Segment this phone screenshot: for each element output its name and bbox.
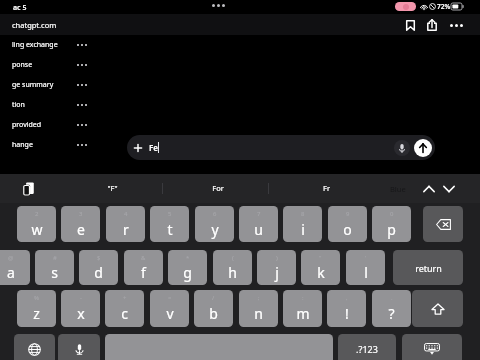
- staticText: l: [364, 263, 368, 282]
- button[interactable]: .: [372, 290, 411, 327]
- staticText: Fe: [149, 142, 158, 153]
- button[interactable]: [105, 334, 333, 360]
- staticText: y: [211, 220, 219, 239]
- button[interactable]: *: [168, 250, 207, 285]
- button[interactable]: ": [301, 250, 340, 285]
- button[interactable]: Add attachment: [129, 139, 147, 157]
- staticText: ': [365, 254, 367, 262]
- button[interactable]: hange: [0, 135, 100, 155]
- button[interactable]: Backspace: [423, 206, 463, 242]
- staticText: .?123: [356, 343, 378, 355]
- button[interactable]: Share: [423, 16, 441, 34]
- button[interactable]: Dictate: [394, 140, 410, 156]
- button[interactable]: (: [213, 250, 252, 285]
- button[interactable]: $: [79, 250, 118, 285]
- button[interactable]: 3: [61, 206, 100, 242]
- button[interactable]: ': [346, 250, 385, 285]
- staticText: chatgpt.com: [12, 20, 57, 30]
- staticText: provided: [12, 120, 42, 130]
- button[interactable]: ponse: [0, 55, 100, 75]
- staticText: s: [51, 263, 58, 282]
- button[interactable]: "F": [86, 178, 138, 198]
- button[interactable]: .?123: [338, 334, 396, 360]
- staticText: Fr: [323, 183, 330, 193]
- staticText: v: [166, 304, 174, 323]
- staticText: ?: [388, 304, 395, 323]
- staticText: ): [276, 254, 278, 262]
- button[interactable]: Shift: [412, 290, 463, 327]
- button[interactable]: Previous suggestion: [421, 181, 436, 196]
- button[interactable]: -: [61, 290, 100, 327]
- staticText: a: [7, 263, 15, 282]
- button[interactable]: Next suggestion: [441, 181, 456, 196]
- staticText: ling exchange: [12, 40, 58, 50]
- staticText: ge summary: [12, 80, 54, 90]
- button[interactable]: For: [192, 178, 244, 198]
- staticText: (: [232, 254, 234, 262]
- button[interactable]: 2: [17, 206, 56, 242]
- button[interactable]: @: [0, 250, 30, 285]
- button[interactable]: Bookmarks: [401, 16, 419, 34]
- staticText: t: [167, 220, 173, 239]
- button[interactable]: 0: [372, 206, 411, 242]
- button[interactable]: Fr: [300, 178, 352, 198]
- staticText: n: [254, 304, 263, 323]
- button[interactable]: Switch keyboard language: [14, 334, 55, 360]
- staticText: &: [141, 254, 146, 262]
- staticText: p: [387, 220, 396, 239]
- button[interactable]: 6: [195, 206, 234, 242]
- button[interactable]: +: [105, 290, 144, 327]
- button[interactable]: provided: [0, 115, 100, 135]
- button[interactable]: Send: [414, 139, 432, 157]
- staticText: 9: [346, 210, 350, 218]
- button[interactable]: ): [257, 250, 296, 285]
- staticText: k: [317, 263, 325, 282]
- staticText: m: [296, 304, 310, 323]
- button[interactable]: /: [194, 290, 233, 327]
- staticText: 5: [168, 210, 172, 218]
- button[interactable]: Voice input: [58, 334, 100, 360]
- staticText: w: [31, 220, 43, 239]
- staticText: ;: [258, 294, 260, 302]
- staticText: 72%: [437, 2, 451, 11]
- button[interactable]: tion: [0, 95, 100, 115]
- button[interactable]: Hide keyboard: [402, 334, 462, 360]
- staticText: %: [34, 294, 39, 302]
- staticText: =: [168, 294, 172, 302]
- button[interactable]: %: [17, 290, 56, 327]
- staticText: "F": [107, 183, 118, 193]
- staticText: 0: [390, 210, 394, 218]
- button[interactable]: ;: [239, 290, 278, 327]
- staticText: j: [275, 263, 279, 282]
- staticText: 4: [124, 210, 128, 218]
- staticText: e: [77, 220, 85, 239]
- staticText: x: [77, 304, 85, 323]
- button[interactable]: ling exchange: [0, 35, 100, 55]
- button[interactable]: return: [393, 250, 463, 285]
- button[interactable]: Paste: [21, 181, 36, 196]
- staticText: z: [33, 304, 40, 323]
- staticText: 3: [79, 210, 83, 218]
- button[interactable]: 8: [283, 206, 322, 242]
- button[interactable]: 4: [106, 206, 145, 242]
- button[interactable]: ,: [327, 290, 366, 327]
- button[interactable]: :: [283, 290, 322, 327]
- staticText: #: [53, 254, 57, 262]
- staticText: /: [212, 294, 215, 302]
- button[interactable]: #: [35, 250, 74, 285]
- button[interactable]: 7: [239, 206, 278, 242]
- button[interactable]: More options: [447, 16, 465, 34]
- staticText: ": [319, 254, 322, 262]
- button[interactable]: 5: [150, 206, 189, 242]
- button[interactable]: &: [124, 250, 163, 285]
- button[interactable]: ge summary: [0, 75, 100, 95]
- staticText: *: [186, 254, 190, 262]
- staticText: f: [141, 263, 146, 282]
- button[interactable]: 9: [328, 206, 367, 242]
- staticText: b: [209, 304, 218, 323]
- button[interactable]: =: [150, 290, 189, 327]
